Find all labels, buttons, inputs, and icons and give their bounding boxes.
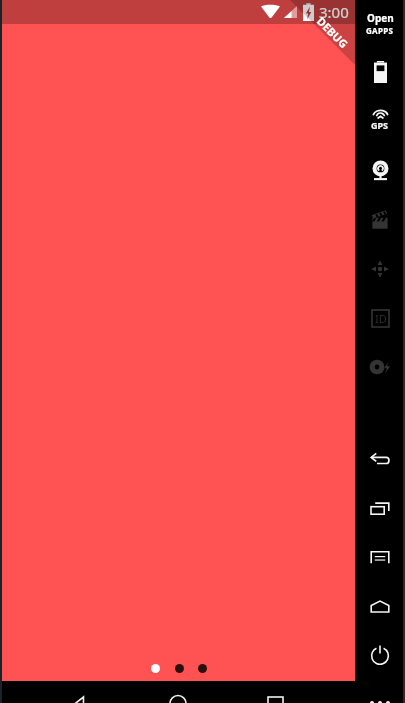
button[interactable]: Device id xyxy=(357,301,403,335)
staticText: Open xyxy=(367,11,394,25)
button[interactable]: Record screen xyxy=(357,202,403,236)
button[interactable]: Back xyxy=(357,442,403,476)
button[interactable]: Record xyxy=(357,350,403,384)
button[interactable]: Recent apps xyxy=(258,692,292,703)
button[interactable]: Power xyxy=(357,638,403,672)
staticText: GAPPS xyxy=(366,25,394,36)
staticText: ID xyxy=(375,311,387,326)
button[interactable]: Open GAPPS xyxy=(357,11,403,36)
button[interactable]: More xyxy=(357,686,403,703)
button[interactable]: Home xyxy=(161,692,195,703)
staticText: GPS xyxy=(371,119,389,131)
button[interactable]: Overview xyxy=(357,491,403,525)
button[interactable]: Back xyxy=(62,692,96,703)
button[interactable]: Webcam xyxy=(357,153,403,187)
button[interactable]: Battery xyxy=(357,55,403,89)
button[interactable]: Menu xyxy=(357,540,403,574)
button[interactable]: GPS xyxy=(357,103,403,137)
staticText: 3:00 xyxy=(319,2,349,22)
staticText: DEBUG xyxy=(314,14,351,51)
button[interactable]: Directional pad xyxy=(357,252,403,286)
button[interactable]: Home xyxy=(357,589,403,623)
